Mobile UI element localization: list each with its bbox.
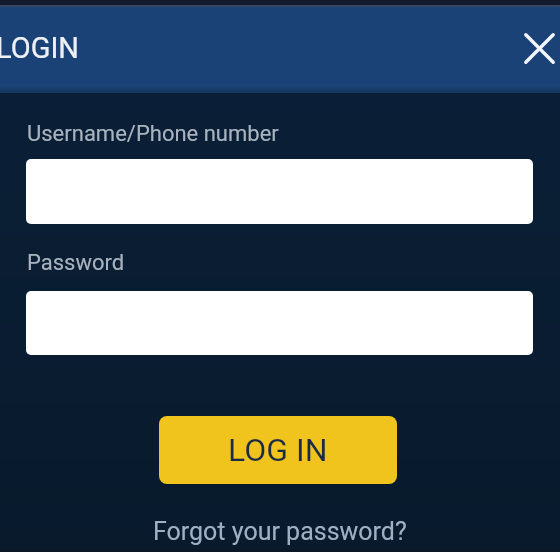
staticText: Password (27, 250, 125, 276)
button[interactable] (26, 291, 533, 355)
button[interactable] (26, 159, 533, 224)
staticText: LOGIN (0, 31, 79, 65)
button[interactable] (521, 30, 558, 67)
button[interactable]: Forgot your password? (153, 517, 407, 546)
staticText: Username/Phone number (27, 121, 279, 147)
staticText: LOG IN (228, 431, 328, 469)
button[interactable]: LOG IN (159, 416, 397, 484)
